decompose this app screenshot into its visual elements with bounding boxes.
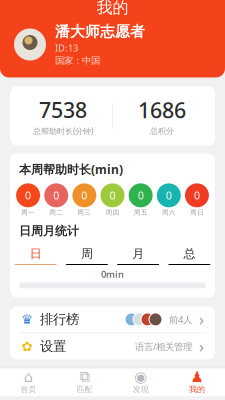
staticText: 日 [30, 246, 42, 261]
button[interactable]: ✿ [10, 333, 215, 359]
staticText: 本周帮助时长(min) [19, 161, 123, 177]
staticText: 7538 [39, 95, 87, 124]
staticText: ⧉ [79, 370, 89, 384]
staticText: 语言/相关管理 [135, 340, 192, 353]
staticText: 设置 [40, 338, 66, 355]
staticText: 我的 [96, 0, 128, 17]
button[interactable]: ⧉ [56, 368, 112, 396]
staticText: 周六 [162, 208, 176, 217]
staticText: ⌂ [24, 369, 33, 385]
staticText: 周三 [77, 208, 91, 217]
button[interactable]: ◉ [112, 368, 169, 396]
staticText: 我的 [189, 384, 205, 394]
button[interactable]: 月 [112, 246, 164, 265]
staticText: 周四 [105, 208, 119, 217]
staticText: › [199, 336, 204, 357]
staticText: 0 [109, 188, 115, 202]
staticText: 周一 [21, 208, 35, 217]
staticText: › [199, 309, 204, 330]
staticText: 日周月统计 [19, 223, 79, 238]
staticText: 发现 [133, 384, 149, 394]
button[interactable]: ♟ [169, 368, 225, 396]
staticText: 0 [53, 188, 59, 202]
button[interactable]: 总 [164, 246, 215, 265]
staticText: 0min [101, 268, 124, 280]
button[interactable]: 日 [10, 246, 61, 265]
staticText: ♟ [190, 369, 203, 385]
staticText: 周日 [190, 208, 204, 217]
staticText: ✿ [21, 339, 32, 354]
staticText: 总 [183, 246, 195, 261]
staticText: 排行榜 [40, 311, 79, 328]
staticText: 首页 [20, 384, 36, 394]
staticText: ◉ [134, 369, 147, 385]
staticText: 潘大师志愿者 [55, 23, 145, 41]
staticText: 月 [132, 246, 144, 261]
staticText: 0 [194, 188, 200, 202]
button[interactable]: ♛ [10, 306, 215, 332]
staticText: ♛ [21, 312, 33, 327]
staticText: 0 [81, 188, 87, 202]
staticText: 总帮助时长(分钟) [33, 126, 93, 136]
staticText: 0 [25, 188, 31, 202]
staticText: 周二 [49, 208, 63, 217]
staticText: 周 [81, 246, 93, 261]
staticText: ID:13 [55, 42, 78, 54]
button[interactable]: ⌂ [0, 368, 56, 396]
staticText: 1686 [138, 96, 186, 124]
staticText: 总积分 [150, 126, 174, 136]
staticText: 0 [166, 188, 172, 202]
staticText: 国家：中国 [55, 55, 100, 66]
staticText: 0 [138, 188, 144, 202]
staticText: 周五 [134, 208, 148, 217]
button[interactable]: 周 [61, 246, 112, 265]
staticText: 匹配 [76, 384, 92, 394]
staticText: 前4人 [169, 313, 192, 326]
